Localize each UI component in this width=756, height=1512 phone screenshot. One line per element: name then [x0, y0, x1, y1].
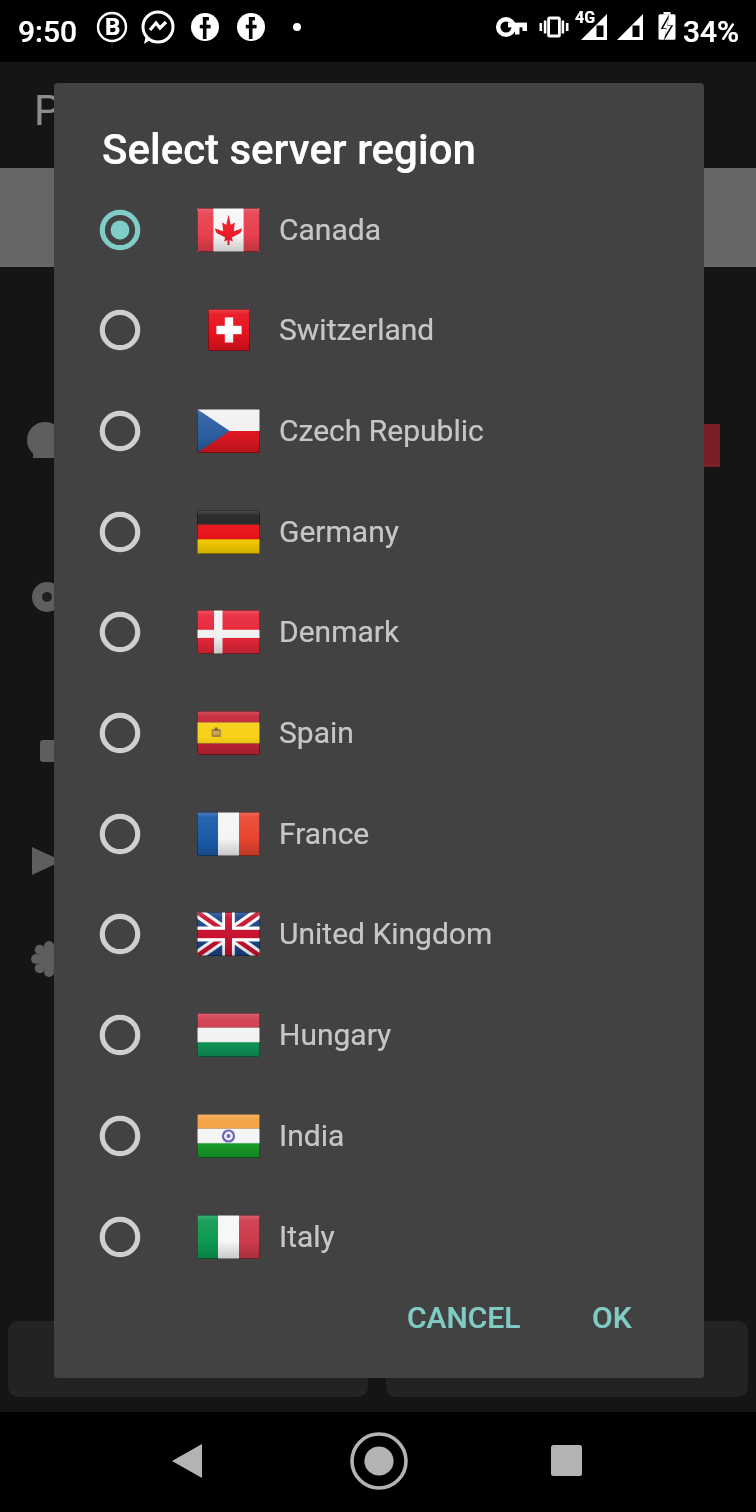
button[interactable]: Back	[150, 1430, 224, 1494]
button[interactable]: Italy	[54, 1186, 704, 1287]
staticText: B	[105, 13, 121, 41]
staticText: France	[279, 816, 370, 851]
button[interactable]: Canada	[54, 179, 704, 280]
button[interactable]: United Kingdom	[54, 883, 704, 984]
button[interactable]: Germany	[54, 481, 704, 582]
staticText: Switzerland	[279, 312, 435, 347]
staticText: Canada	[279, 212, 381, 247]
button[interactable]: OK	[564, 1279, 660, 1355]
button[interactable]: Hungary	[54, 984, 704, 1085]
staticText: CANCEL	[407, 1300, 521, 1335]
button[interactable]: Czech Republic	[54, 380, 704, 481]
staticText: Italy	[279, 1219, 335, 1254]
button[interactable]: India	[54, 1085, 704, 1186]
staticText: Denmark	[279, 614, 400, 649]
button[interactable]: Denmark	[54, 581, 704, 682]
staticText: Spain	[279, 715, 354, 750]
staticText: United Kingdom	[279, 916, 493, 951]
button[interactable]: Switzerland	[54, 279, 704, 380]
button[interactable]: Home	[343, 1425, 415, 1497]
staticText: Select server region	[102, 125, 476, 174]
staticText: India	[279, 1118, 345, 1153]
staticText: OK	[592, 1300, 632, 1335]
staticText: Germany	[279, 514, 399, 549]
button[interactable]: Spain	[54, 682, 704, 783]
staticText: Hungary	[279, 1017, 392, 1052]
staticText: 4G	[575, 8, 596, 27]
staticText: P	[34, 86, 61, 135]
staticText: 34%	[683, 14, 740, 49]
staticText: Czech Republic	[279, 413, 484, 448]
button[interactable]: CANCEL	[394, 1279, 534, 1355]
button[interactable]: France	[54, 783, 704, 884]
button[interactable]: Recent apps	[535, 1432, 599, 1496]
staticText: 9:50	[18, 14, 78, 49]
